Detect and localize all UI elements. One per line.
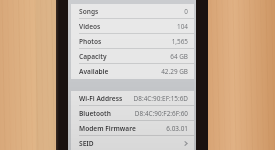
button[interactable]: SEID	[71, 136, 194, 150]
staticText: 42.29 GB	[161, 67, 188, 76]
other: Open SEID	[184, 140, 188, 147]
button[interactable]: Bluetooth	[71, 106, 194, 121]
staticText: Capacity	[79, 52, 107, 61]
staticText: Available	[79, 67, 109, 76]
button[interactable]: Wi-Fi Address	[71, 91, 194, 106]
staticText: 104	[177, 22, 188, 31]
staticText: Modem Firmware	[79, 124, 136, 133]
staticText: Bluetooth	[79, 109, 111, 118]
staticText: Songs	[79, 7, 99, 16]
staticText: 6.03.01	[166, 124, 188, 133]
staticText: SEID	[79, 139, 94, 148]
button[interactable]: Capacity	[71, 49, 194, 64]
staticText: Wi-Fi Address	[79, 94, 123, 103]
button[interactable]: Songs	[71, 4, 194, 19]
staticText: D8:4C:90:F2:6F:60	[134, 109, 188, 118]
button[interactable]: Photos	[71, 34, 194, 49]
staticText: 0	[184, 7, 188, 16]
button[interactable]: Available	[71, 64, 194, 79]
staticText: Videos	[79, 22, 101, 31]
button[interactable]: Videos	[71, 19, 194, 34]
staticText: D8:4C:90:EF:15:6D	[133, 94, 188, 103]
staticText: Photos	[79, 37, 102, 46]
button[interactable]: Modem Firmware	[71, 121, 194, 136]
staticText: 64 GB	[170, 52, 188, 61]
staticText: 1,565	[171, 37, 188, 46]
